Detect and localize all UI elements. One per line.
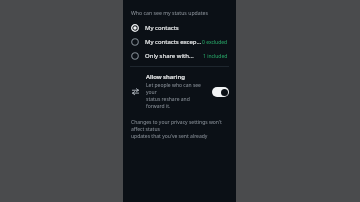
button[interactable]: My contacts except… (123, 35, 236, 49)
button[interactable]: Allow sharing (123, 70, 236, 113)
staticText: 1 included (203, 53, 228, 60)
button[interactable]: Only share with… (123, 49, 236, 63)
button[interactable]: Allow sharing toggle (212, 87, 229, 97)
staticText: 0 excluded (202, 39, 228, 46)
staticText: Let people who can see your status resha… (146, 82, 208, 110)
button[interactable]: My contacts (123, 21, 236, 35)
staticText: My contacts (145, 24, 228, 32)
staticText: Allow sharing (146, 73, 185, 81)
staticText: Who can see my status updates (131, 9, 208, 16)
staticText: Only share with… (145, 52, 203, 60)
staticText: My contacts except… (145, 38, 202, 46)
staticText: Changes to your privacy settings won't a… (131, 119, 228, 140)
